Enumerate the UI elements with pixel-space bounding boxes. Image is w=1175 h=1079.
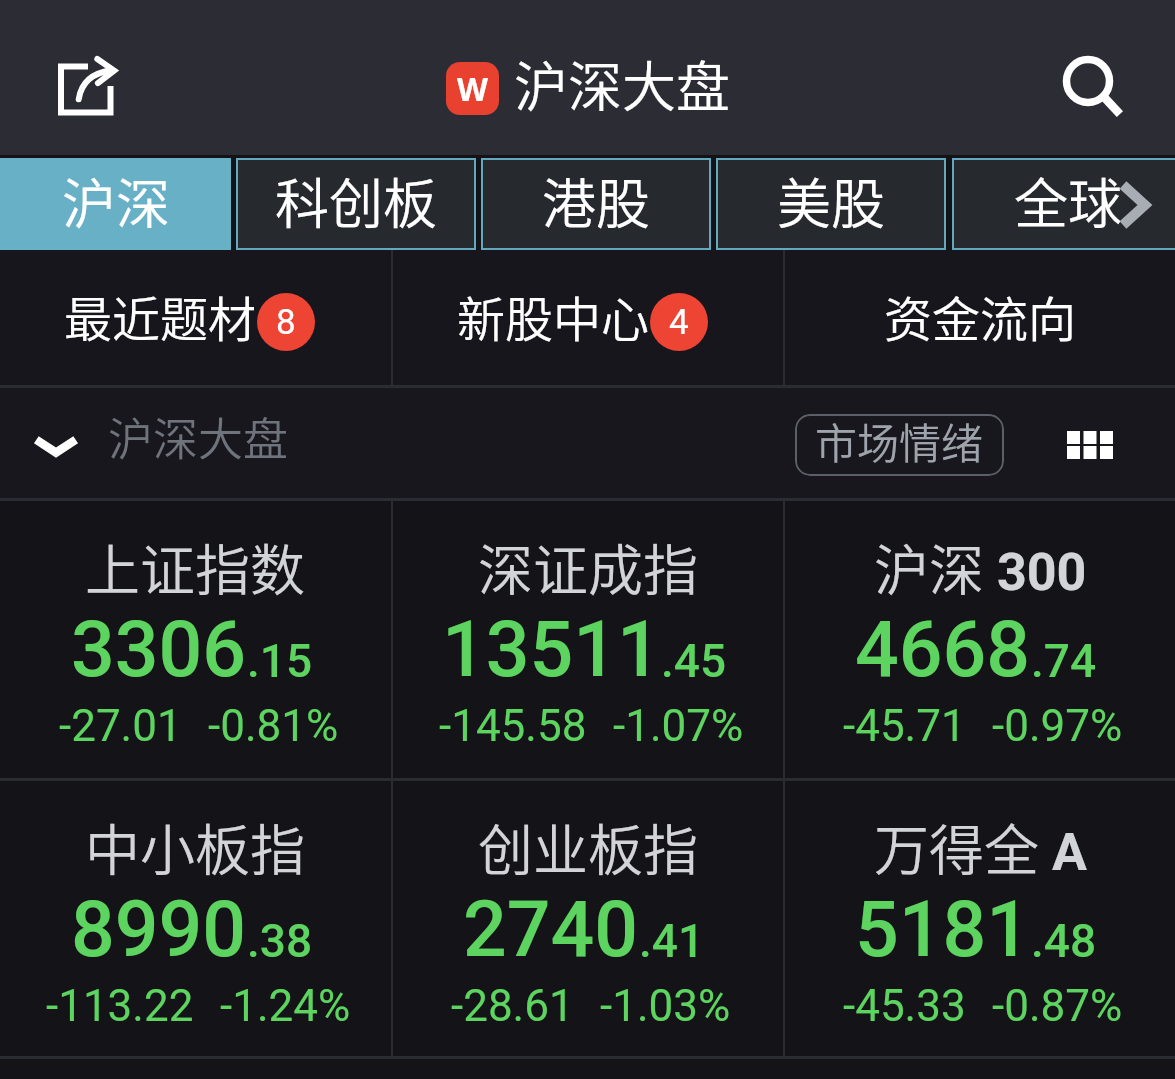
button[interactable]: 港股 [481,158,711,250]
staticText: -145.58 [439,700,587,752]
button[interactable]: 科创板 [236,158,476,250]
staticText: -45.71 [843,700,966,752]
staticText: 全球 [1014,161,1122,239]
staticText: 科创板 [275,161,437,239]
button[interactable]: 深证成指 [393,501,783,778]
staticText: 上证指数 [85,526,306,606]
button[interactable]: Grid view [1059,414,1121,476]
staticText: .38 [247,914,313,968]
button[interactable]: 沪深 300 [785,501,1175,778]
staticText: 沪深 300 [874,526,1087,606]
staticText: -0.97% [992,700,1123,752]
staticText: 创业板指 [478,806,699,886]
staticText: 新股中心 [457,281,650,351]
staticText: 4668 [855,605,1031,695]
button[interactable]: 中小板指 [0,781,391,1056]
staticText: 美股 [777,161,885,239]
staticText: 资金流向 [884,281,1077,351]
staticText: -1.24% [220,980,351,1032]
staticText: 沪深大盘 [514,44,730,122]
staticText: 8 [276,302,296,343]
staticText: .48 [1031,914,1097,968]
staticText: -27.01 [59,700,182,752]
staticText: 中小板指 [85,806,306,886]
staticText: -1.03% [600,980,731,1032]
button[interactable]: 资金流向 [785,250,1175,385]
staticText: -1.07% [613,700,744,752]
button[interactable]: 全球 [952,158,1175,250]
button[interactable]: 万得全 A [785,781,1175,1056]
staticText: -0.87% [992,980,1123,1032]
staticText: 沪深大盘 [108,404,289,469]
staticText: 港股 [542,161,650,239]
staticText: 5181 [855,885,1031,975]
staticText: .15 [247,634,313,688]
button[interactable]: Share [33,34,137,138]
staticText: .41 [639,914,705,968]
staticText: 沪深 [62,161,170,239]
staticText: 4 [669,302,689,343]
button[interactable]: Search [1040,34,1144,138]
button[interactable]: 最近题材 [0,250,391,385]
staticText: .74 [1031,634,1097,688]
staticText: 深证成指 [478,526,699,606]
staticText: -45.33 [843,980,966,1032]
staticText: 8990 [71,885,247,975]
staticText: W [457,67,488,111]
staticText: 2740 [463,885,639,975]
staticText: 3306 [71,605,247,695]
staticText: 13511 [442,605,661,695]
staticText: 最近题材 [64,281,257,351]
staticText: -0.81% [208,700,339,752]
button[interactable]: 美股 [716,158,946,250]
button[interactable]: 沪深 [0,158,231,250]
button[interactable]: 市场情绪 [795,414,1004,476]
staticText: 万得全 A [874,806,1087,886]
button[interactable]: 上证指数 [0,501,391,778]
staticText: -28.61 [451,980,574,1032]
staticText: -113.22 [46,980,194,1032]
button[interactable]: 沪深大盘 [32,411,289,476]
staticText: 市场情绪 [815,414,984,471]
button[interactable]: 新股中心 [393,250,783,385]
staticText: .45 [661,634,727,688]
button[interactable]: 创业板指 [393,781,783,1056]
